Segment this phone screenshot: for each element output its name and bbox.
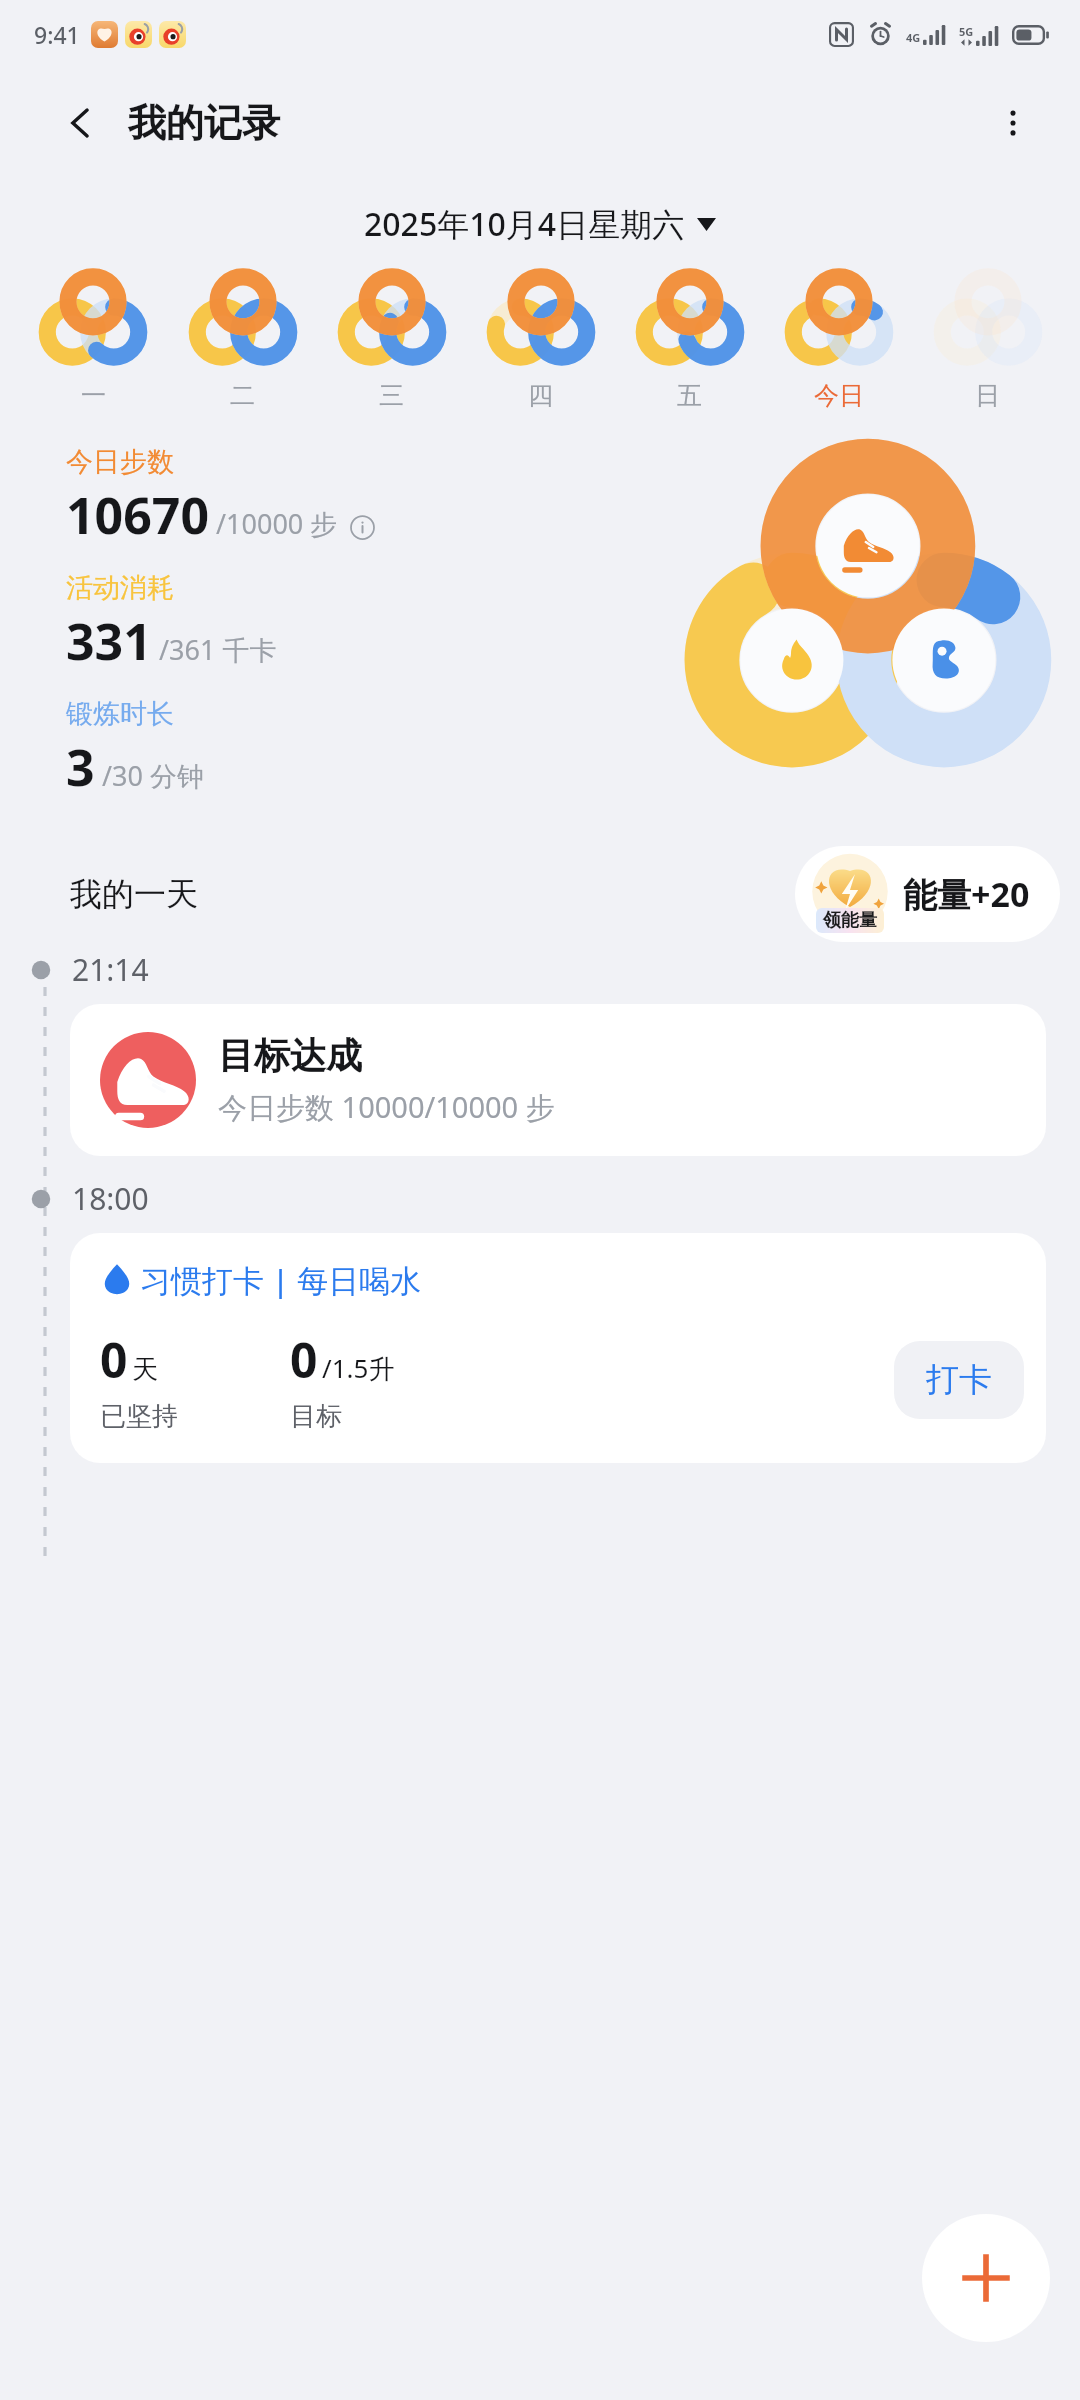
staticText: 活动消耗 <box>66 571 174 605</box>
button[interactable]: Back <box>52 94 110 152</box>
staticText: 领能量 <box>823 909 877 932</box>
staticText: 已坚持 <box>100 1400 178 1433</box>
staticText: 今日步数 10000/10000 步 <box>218 1087 555 1127</box>
button[interactable]: More options <box>982 92 1044 154</box>
button[interactable]: Info <box>348 513 376 541</box>
staticText: 4G <box>906 30 921 45</box>
button[interactable]: 日 <box>913 262 1062 415</box>
staticText: 0 <box>100 1327 128 1392</box>
staticText: 331 <box>66 607 152 675</box>
staticText: 一 <box>81 380 106 411</box>
staticText: 0 <box>290 1327 318 1392</box>
button[interactable]: 打卡 <box>894 1341 1024 1419</box>
staticText: 目标达成 <box>218 1033 362 1078</box>
button[interactable]: 五 <box>615 262 764 415</box>
staticText: 18:00 <box>72 1178 149 1219</box>
staticText: 打卡 <box>926 1359 992 1401</box>
staticText: 我的一天 <box>70 874 198 914</box>
staticText: /10000 步 <box>216 505 338 542</box>
button[interactable]: 今日 <box>764 262 913 415</box>
button[interactable]: 一 <box>18 262 168 415</box>
staticText: /30 分钟 <box>102 757 204 794</box>
staticText: 3 <box>66 733 95 801</box>
staticText: 锻炼时长 <box>66 697 174 731</box>
button[interactable]: 四 <box>466 262 615 415</box>
staticText: 9:41 <box>34 19 80 50</box>
staticText: 今日步数 <box>66 445 174 479</box>
staticText: /1.5升 <box>322 1350 395 1386</box>
staticText: 三 <box>379 380 404 411</box>
staticText: 10670 <box>66 481 209 549</box>
staticText: 习惯打卡 | 每日喝水 <box>140 1259 422 1301</box>
button[interactable]: 二 <box>168 262 317 415</box>
button[interactable]: 2025年10月4日星期六 <box>0 202 1080 246</box>
button[interactable]: 目标达成 <box>70 1004 1046 1156</box>
staticText: 天 <box>132 1353 158 1386</box>
button[interactable]: 三 <box>317 262 466 415</box>
staticText: 二 <box>230 380 255 411</box>
staticText: 2025年10月4日星期六 <box>364 202 685 246</box>
staticText: 目标 <box>290 1400 342 1433</box>
staticText: 日 <box>975 380 1000 411</box>
button[interactable]: 习惯打卡 | 每日喝水 <box>70 1233 1046 1463</box>
staticText: 今日 <box>814 380 864 411</box>
button[interactable]: Activity rings <box>676 433 1056 813</box>
staticText: 5G <box>959 24 974 39</box>
staticText: 五 <box>677 380 702 411</box>
staticText: 能量+20 <box>903 871 1030 917</box>
button[interactable]: Add record <box>922 2214 1050 2342</box>
staticText: 我的记录 <box>128 99 280 147</box>
button[interactable]: 领能量 <box>795 846 1060 942</box>
staticText: 21:14 <box>72 949 149 990</box>
staticText: /361 千卡 <box>159 631 277 668</box>
staticText: 四 <box>528 380 553 411</box>
